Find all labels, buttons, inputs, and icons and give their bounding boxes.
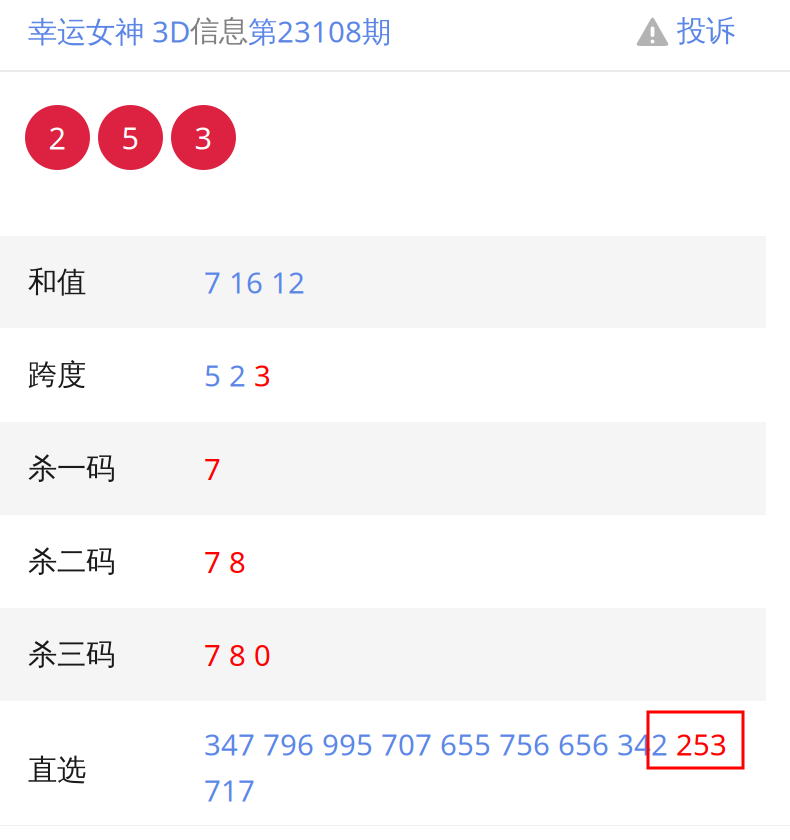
staticText: 2 bbox=[48, 117, 66, 158]
staticText: 7 8 bbox=[204, 542, 246, 581]
staticText: 直选 bbox=[28, 752, 86, 788]
staticText: 幸运女神 3D bbox=[28, 11, 190, 50]
staticText: 347 796 995 707 655 756 656 342 bbox=[204, 724, 668, 763]
staticText: 7 8 0 bbox=[204, 635, 271, 674]
staticText: 7 16 12 bbox=[204, 262, 305, 301]
button[interactable]: 投诉 bbox=[635, 3, 735, 59]
staticText: 5 bbox=[121, 117, 139, 158]
staticText: 717 bbox=[204, 770, 255, 809]
staticText: 3 bbox=[254, 355, 271, 394]
staticText: 跨度 bbox=[28, 357, 86, 393]
staticText: 5 2 bbox=[204, 355, 254, 394]
staticText: 253 bbox=[668, 724, 727, 763]
staticText: 7 bbox=[204, 449, 221, 488]
staticText: 信息 bbox=[190, 13, 248, 49]
staticText: 第23108期 bbox=[248, 11, 391, 50]
staticText: 杀二码 bbox=[28, 543, 115, 579]
staticText: 杀一码 bbox=[28, 450, 115, 486]
staticText: 3 bbox=[194, 117, 212, 158]
staticText: 投诉 bbox=[677, 13, 735, 49]
staticText: 和值 bbox=[28, 264, 86, 300]
staticText: 杀三码 bbox=[28, 636, 115, 672]
